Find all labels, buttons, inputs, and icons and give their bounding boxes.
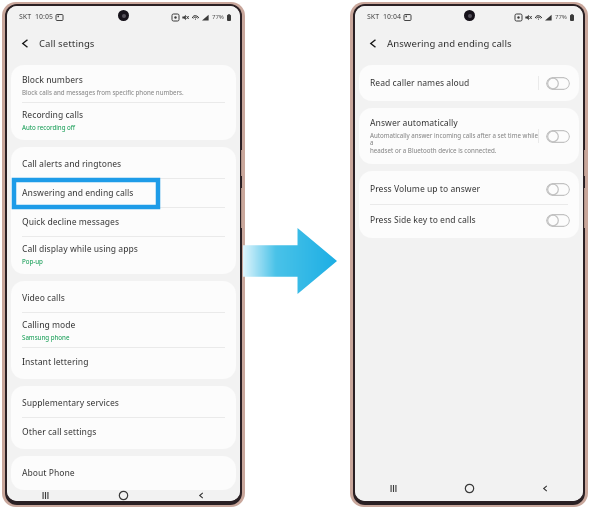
button[interactable]: Back: [363, 33, 383, 53]
staticText: Video calls: [22, 292, 65, 304]
staticText: Call display while using apps: [22, 243, 138, 255]
button[interactable]: Toggle: [546, 130, 570, 143]
staticText: Press Side key to end calls: [370, 214, 476, 226]
staticText: Pop-up: [22, 257, 43, 265]
staticText: Block numbers: [22, 74, 83, 86]
staticText: Samsung phone: [22, 333, 70, 341]
staticText: 77%: [212, 13, 224, 21]
button[interactable]: Home: [431, 475, 507, 501]
staticText: Automatically answer incoming calls afte…: [370, 131, 538, 155]
button[interactable]: Press Side key to end calls: [359, 205, 579, 235]
staticText: Answering and ending calls: [387, 37, 512, 50]
button[interactable]: Recent apps: [7, 490, 84, 501]
staticText: Instant lettering: [22, 356, 89, 368]
button[interactable]: Calling mode: [11, 313, 236, 348]
button[interactable]: Recent apps: [355, 475, 431, 501]
staticText: About Phone: [22, 467, 75, 479]
staticText: Answer automatically: [370, 117, 458, 129]
staticText: Calling mode: [22, 319, 76, 331]
button[interactable]: Other call settings: [11, 418, 236, 446]
staticText: Quick decline messages: [22, 216, 120, 228]
staticText: 10:04: [383, 12, 401, 22]
button[interactable]: Call alerts and ringtones: [11, 150, 236, 179]
button[interactable]: Back: [15, 33, 35, 53]
staticText: Other call settings: [22, 426, 97, 438]
staticText: 77%: [555, 13, 567, 21]
button[interactable]: Press Volume up to answer: [359, 174, 579, 205]
staticText: Recording calls: [22, 109, 84, 121]
staticText: Answering and ending calls: [22, 187, 134, 199]
button[interactable]: About Phone: [11, 459, 236, 487]
button[interactable]: Instant lettering: [11, 348, 236, 376]
button[interactable]: Back: [162, 490, 240, 501]
button[interactable]: Back: [507, 475, 583, 501]
staticText: Auto recording off: [22, 123, 76, 131]
button[interactable]: Block numbers: [11, 68, 236, 103]
staticText: Call settings: [39, 37, 95, 50]
button[interactable]: Call display while using apps: [11, 237, 236, 271]
staticText: SKT: [367, 12, 380, 22]
button[interactable]: Video calls: [11, 284, 236, 313]
staticText: 10:05: [35, 12, 53, 22]
button[interactable]: Toggle: [546, 77, 570, 90]
staticText: Read caller names aloud: [370, 77, 470, 89]
button[interactable]: Home: [84, 490, 162, 501]
staticText: Press Volume up to answer: [370, 183, 481, 195]
staticText: Call alerts and ringtones: [22, 158, 122, 170]
button[interactable]: Answering and ending calls: [11, 179, 236, 208]
staticText: SKT: [19, 12, 32, 22]
button[interactable]: Quick decline messages: [11, 208, 236, 237]
staticText: Block calls and messages from specific p…: [22, 88, 184, 96]
button[interactable]: Supplementary services: [11, 389, 236, 418]
button[interactable]: Toggle: [546, 214, 570, 227]
button[interactable]: Toggle: [546, 183, 570, 196]
button[interactable]: Recording calls: [11, 103, 236, 137]
button[interactable]: Answer automatically: [359, 111, 579, 161]
staticText: Supplementary services: [22, 397, 119, 409]
button[interactable]: Read caller names aloud: [359, 68, 579, 98]
